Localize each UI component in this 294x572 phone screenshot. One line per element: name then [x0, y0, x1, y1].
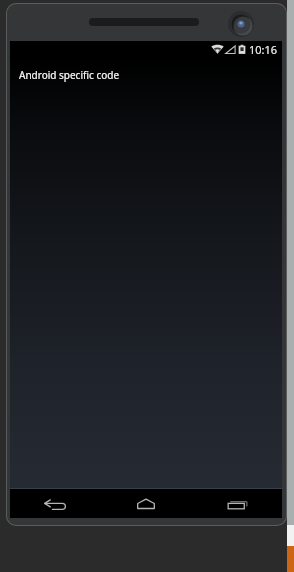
button[interactable]: Back [10, 489, 100, 518]
button[interactable]: Home [100, 489, 191, 518]
staticText: Android specific code [19, 68, 120, 82]
button[interactable]: Recent apps [191, 489, 282, 518]
staticText: 10:16 [249, 42, 278, 57]
